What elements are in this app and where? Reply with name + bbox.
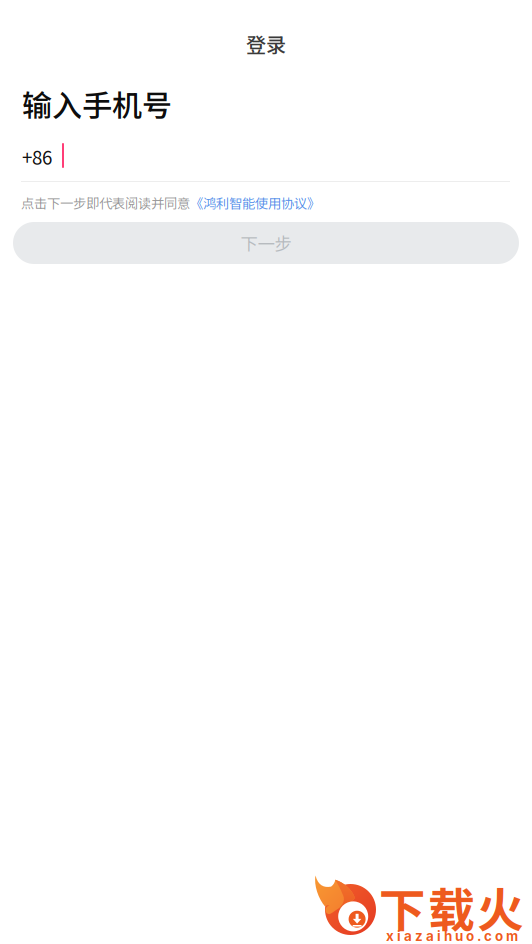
staticText: 点击下一步即代表阅读并同意 xyxy=(21,193,190,212)
staticText: 登录 xyxy=(246,29,286,58)
staticText: +86 xyxy=(22,143,52,170)
staticText: xiazaihuo.com xyxy=(386,928,518,944)
staticText: 输入手机号 xyxy=(22,82,172,125)
button[interactable]: 点击下一步即代表阅读并同意 xyxy=(21,193,320,212)
staticText: 下载火 xyxy=(379,873,524,941)
staticText: 《鸿利智能使用协议》 xyxy=(190,193,320,212)
staticText: 下一步 xyxy=(240,230,291,256)
button[interactable]: 下一步 xyxy=(13,222,519,264)
